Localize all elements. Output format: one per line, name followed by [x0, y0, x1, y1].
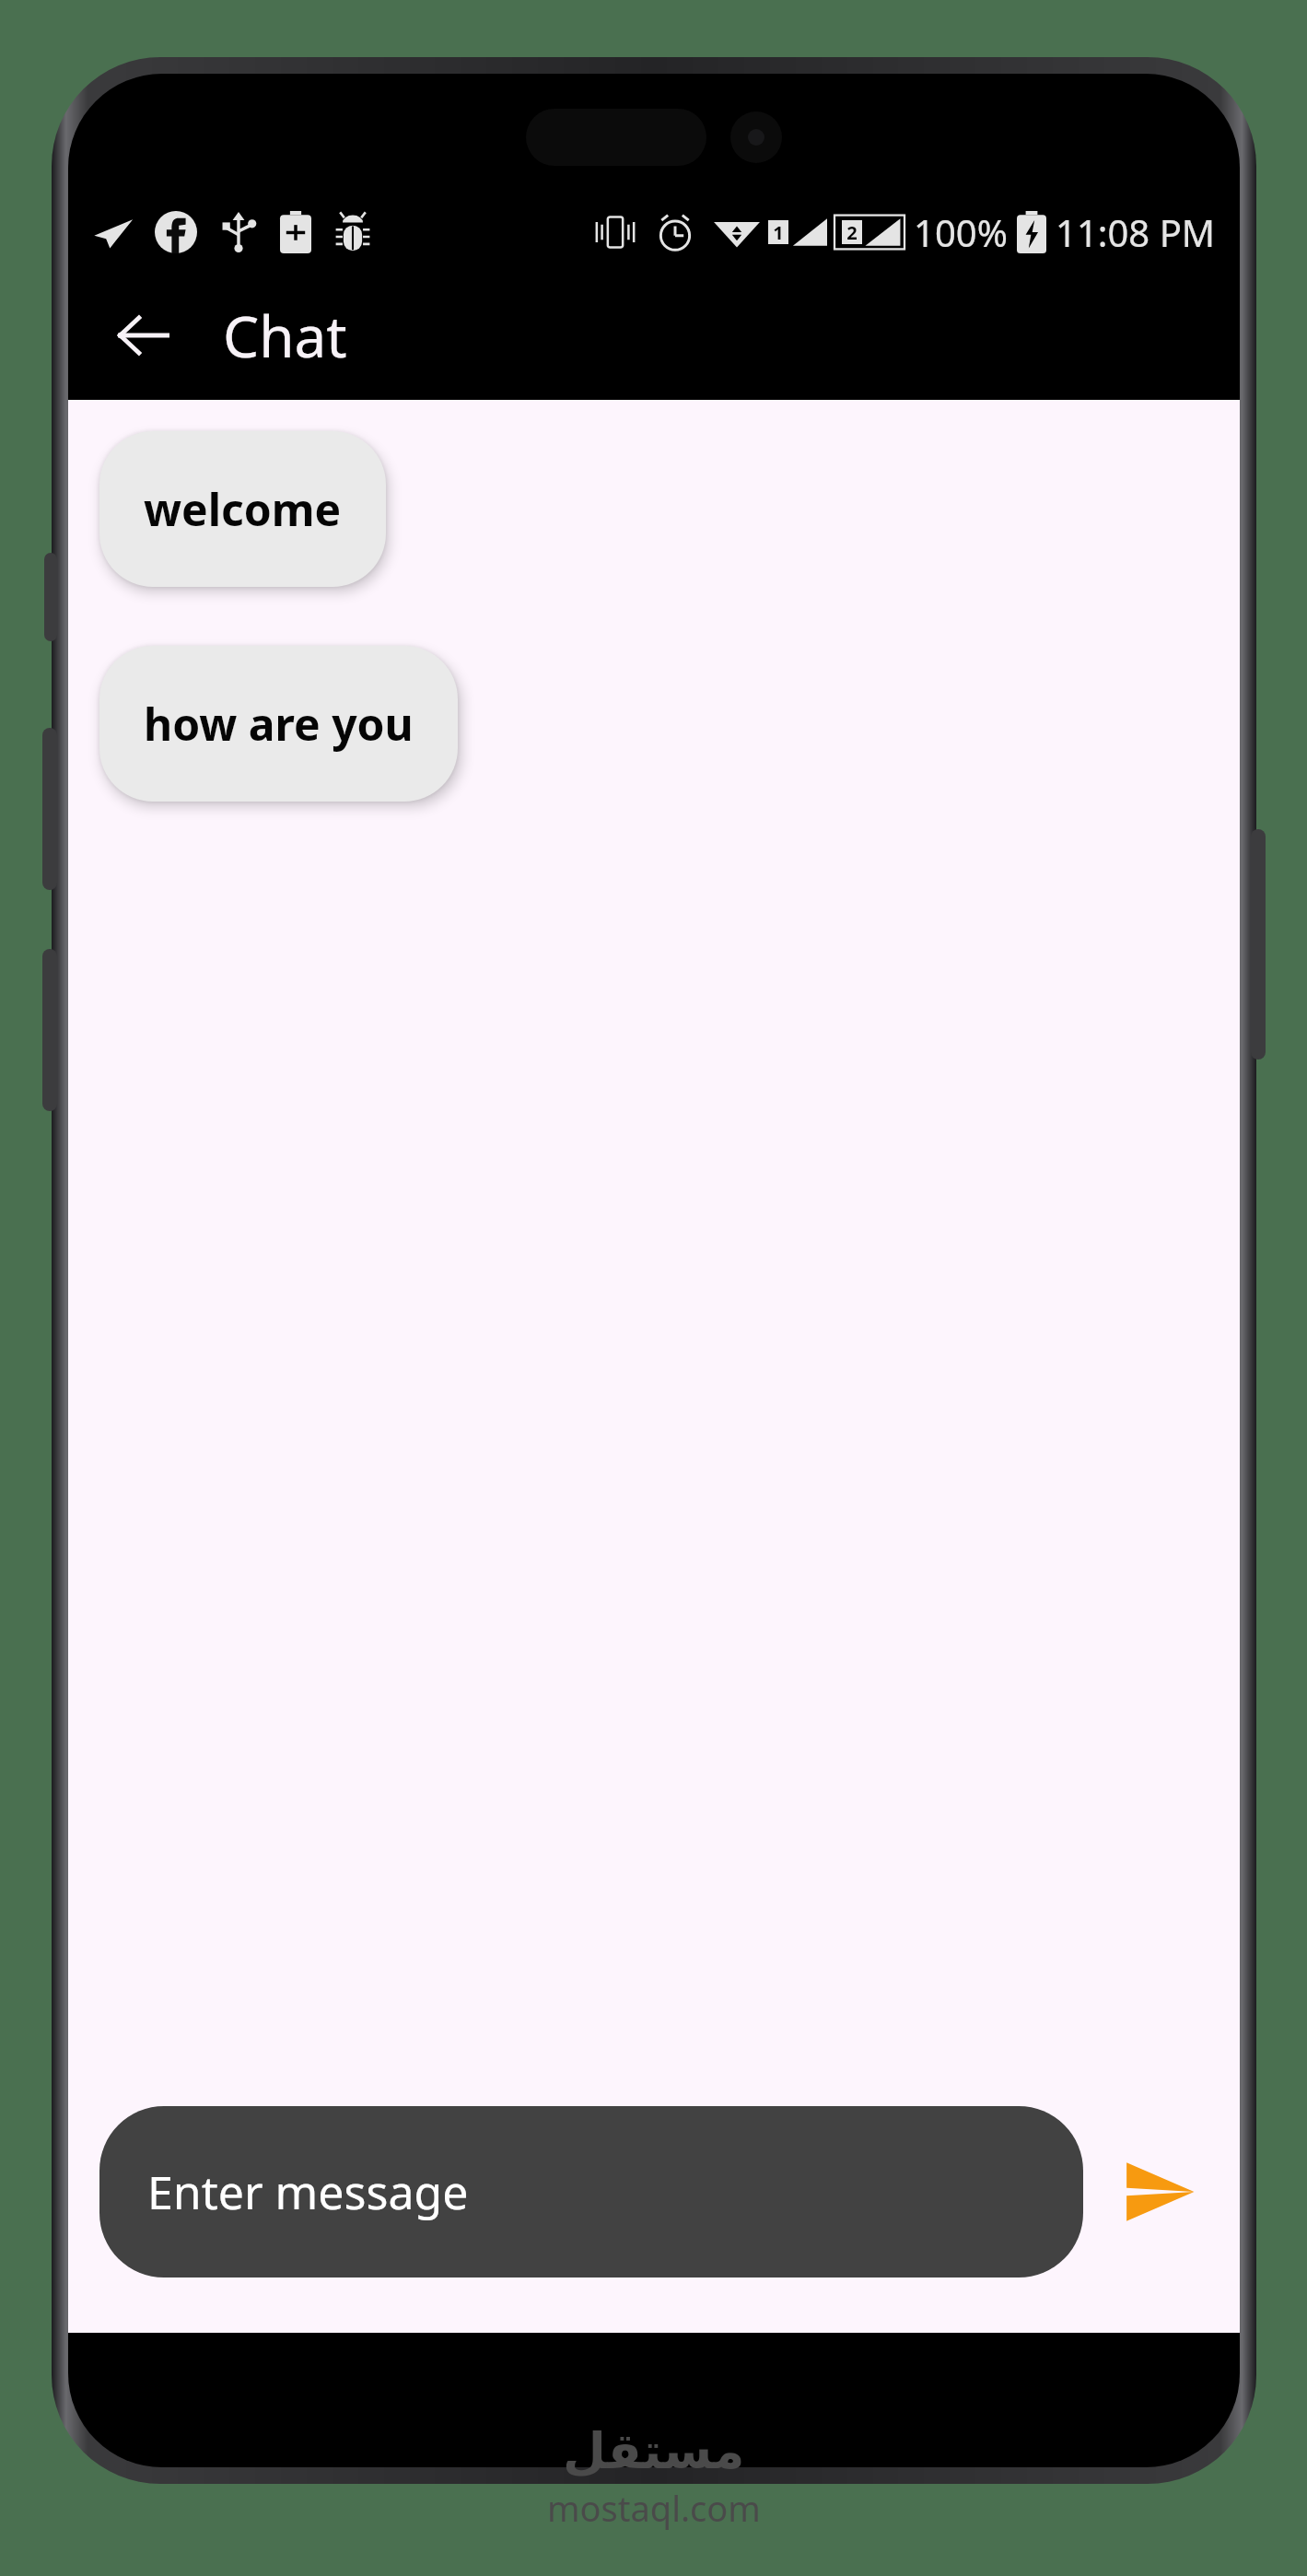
- button[interactable]: how are you: [99, 646, 458, 802]
- button[interactable]: welcome: [99, 431, 386, 587]
- staticText: Chat: [223, 297, 347, 374]
- button[interactable]: Enter message: [99, 2106, 1083, 2277]
- staticText: how are you: [144, 694, 414, 754]
- staticText: welcome: [144, 479, 342, 539]
- staticText: mostaql.com: [547, 2484, 761, 2532]
- staticText: 1: [773, 220, 784, 244]
- staticText: Enter message: [147, 2160, 469, 2223]
- staticText: 11:08 PM: [1056, 207, 1216, 257]
- staticText: مستقل: [563, 2422, 745, 2480]
- staticText: 2: [846, 220, 858, 244]
- button[interactable]: Back: [99, 291, 188, 380]
- button[interactable]: Send: [1105, 2137, 1214, 2246]
- staticText: 100%: [914, 207, 1008, 257]
